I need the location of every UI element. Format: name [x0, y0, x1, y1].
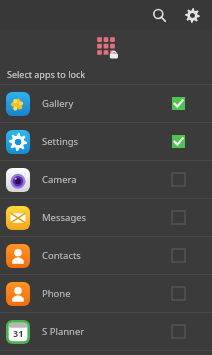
button[interactable]: Contacts	[0, 237, 212, 274]
button[interactable]: App lock	[93, 34, 119, 60]
staticText: Phone	[42, 287, 171, 300]
button[interactable]: Messages	[0, 199, 212, 236]
staticText: Messages	[42, 211, 171, 224]
button[interactable]: Phone	[0, 275, 212, 312]
button[interactable]: Search	[144, 0, 174, 30]
button[interactable]: Settings	[0, 123, 212, 160]
staticText: Settings	[42, 135, 171, 148]
staticText: Select apps to lock	[7, 68, 86, 80]
staticText: Contacts	[42, 249, 171, 262]
staticText: S Planner	[42, 325, 171, 338]
staticText: 31	[13, 327, 24, 339]
button[interactable]: Gallery	[0, 85, 212, 122]
button[interactable]: Camera	[0, 161, 212, 198]
staticText: Gallery	[42, 97, 171, 110]
staticText: Camera	[42, 173, 171, 186]
button[interactable]: Settings	[177, 0, 207, 30]
button[interactable]: 31	[0, 313, 212, 350]
